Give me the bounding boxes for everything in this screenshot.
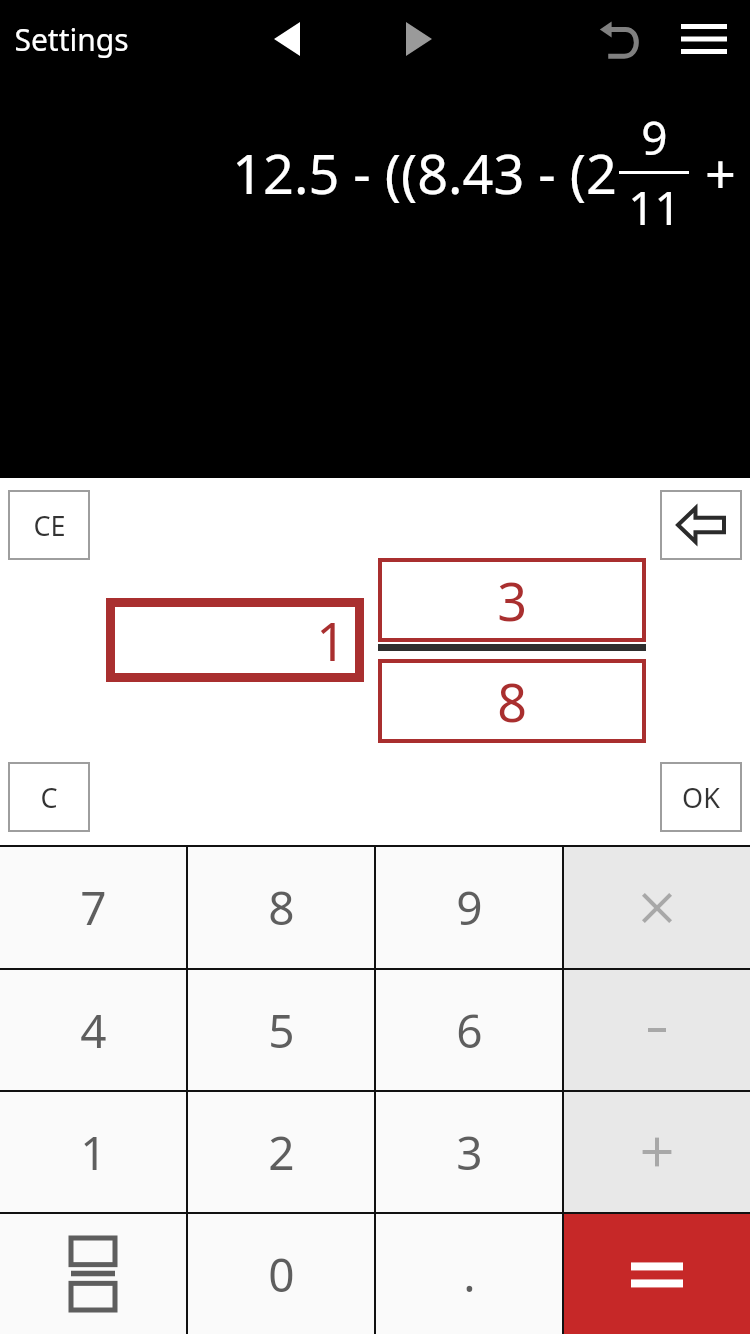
staticText: C — [40, 779, 58, 816]
staticText: 3 — [456, 1121, 483, 1184]
staticText: . — [463, 1243, 476, 1306]
button[interactable]: 8 — [188, 847, 374, 968]
button[interactable]: Previous — [252, 4, 322, 74]
button[interactable]: Backspace — [660, 490, 742, 560]
button[interactable]: 5 — [188, 970, 374, 1090]
staticText: 12.5 - ((8.43 - (2 — [232, 136, 617, 210]
button[interactable]: Next — [384, 4, 454, 74]
staticText: 4 — [80, 999, 107, 1062]
button[interactable]: 7 — [0, 847, 186, 968]
button[interactable]: − — [564, 970, 750, 1090]
staticText: 0 — [268, 1243, 295, 1306]
staticText: 1 — [316, 605, 346, 676]
button[interactable]: 1 — [106, 598, 364, 682]
staticText: 3 — [497, 565, 527, 636]
button[interactable]: Equals — [564, 1214, 750, 1334]
button[interactable]: × — [564, 847, 750, 968]
staticText: 11 — [628, 176, 681, 239]
staticText: Settings — [14, 19, 129, 60]
staticText: 2 — [268, 1121, 295, 1184]
staticText: CE — [33, 507, 66, 544]
button[interactable]: 2 — [188, 1092, 374, 1212]
button[interactable]: 4 — [0, 970, 186, 1090]
staticText: OK — [682, 779, 720, 816]
button[interactable]: + — [564, 1092, 750, 1212]
button[interactable]: 3 — [376, 1092, 562, 1212]
button[interactable]: Menu — [666, 1, 742, 77]
staticText: 7 — [80, 876, 107, 939]
button[interactable]: 1 — [0, 1092, 186, 1212]
button[interactable]: Undo — [584, 3, 656, 75]
button[interactable]: CE — [8, 490, 90, 560]
staticText: 1 — [80, 1121, 107, 1184]
staticText: 9 — [456, 876, 483, 939]
button[interactable]: . — [376, 1214, 562, 1334]
button[interactable]: 3 — [378, 558, 646, 642]
staticText: 8 — [268, 876, 295, 939]
button[interactable]: Settings — [10, 13, 133, 66]
button[interactable]: OK — [660, 762, 742, 832]
staticText: 8 — [497, 666, 527, 737]
button[interactable]: 6 — [376, 970, 562, 1090]
button[interactable]: C — [8, 762, 90, 832]
button[interactable]: 8 — [378, 659, 646, 743]
staticText: + — [691, 136, 736, 210]
button[interactable]: Fraction — [0, 1214, 186, 1334]
staticText: 6 — [456, 999, 483, 1062]
staticText: 9 — [641, 106, 668, 169]
button[interactable]: 9 — [376, 847, 562, 968]
button[interactable]: 0 — [188, 1214, 374, 1334]
staticText: 5 — [268, 999, 295, 1062]
